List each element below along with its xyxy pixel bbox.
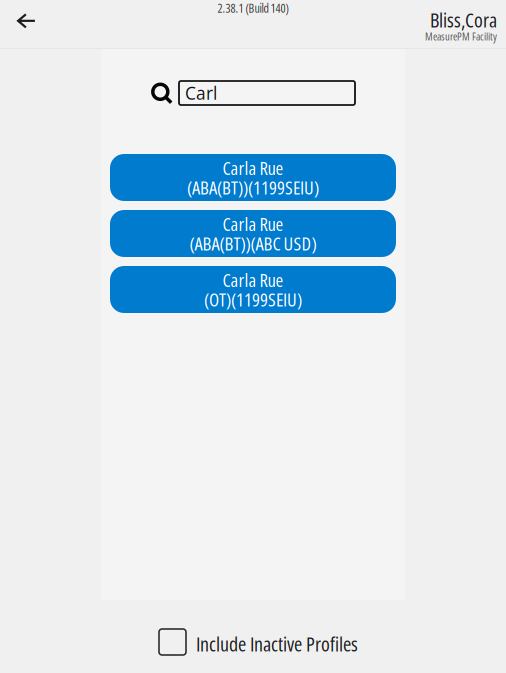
- staticText: Bliss,Cora: [430, 6, 497, 33]
- staticText: MeasurePM Facility: [425, 29, 497, 43]
- staticText: Carla Rue: [222, 267, 283, 292]
- staticText: (OT)(1199SEIU): [204, 286, 302, 312]
- button[interactable]: Carla Rue: [110, 154, 396, 201]
- staticText: Carl: [185, 81, 217, 105]
- staticText: Carla Rue: [222, 211, 283, 236]
- button[interactable]: Include Inactive Profiles: [159, 623, 358, 667]
- button[interactable]: Carla Rue: [110, 210, 396, 257]
- staticText: Include Inactive Profiles: [196, 630, 358, 657]
- staticText: Carla Rue: [222, 155, 283, 180]
- staticText: 2.38.1 (Build 140): [217, 0, 288, 16]
- button[interactable]: Carla Rue: [110, 266, 396, 313]
- staticText: (ABA(BT))(ABC USD): [189, 230, 316, 256]
- button[interactable]: Back: [0, 5, 49, 37]
- staticText: (ABA(BT))(1199SEIU): [187, 174, 319, 200]
